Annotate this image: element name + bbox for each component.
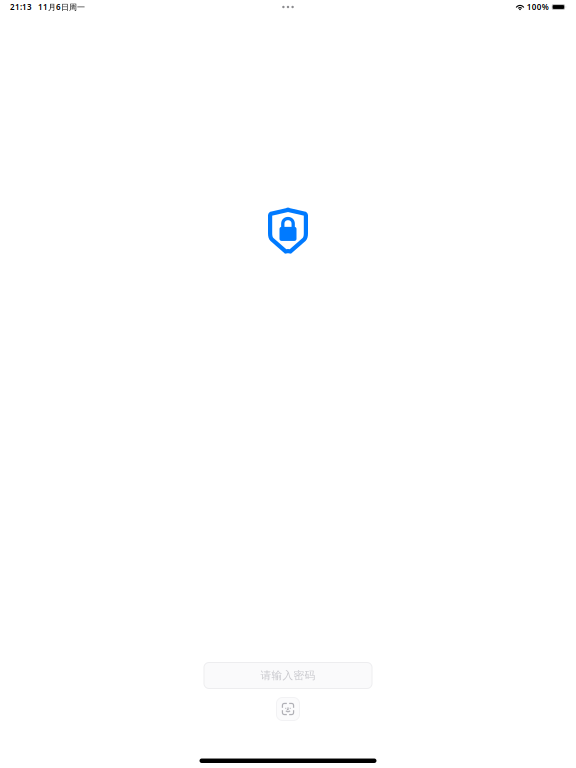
- staticText: 11月6日周一: [38, 2, 85, 12]
- staticText: 21:13: [10, 2, 32, 12]
- staticText: 请输入密码: [260, 669, 315, 682]
- staticText: 100%: [527, 2, 549, 12]
- button[interactable]: Face ID: [276, 697, 299, 720]
- button[interactable]: 请输入密码: [204, 662, 372, 688]
